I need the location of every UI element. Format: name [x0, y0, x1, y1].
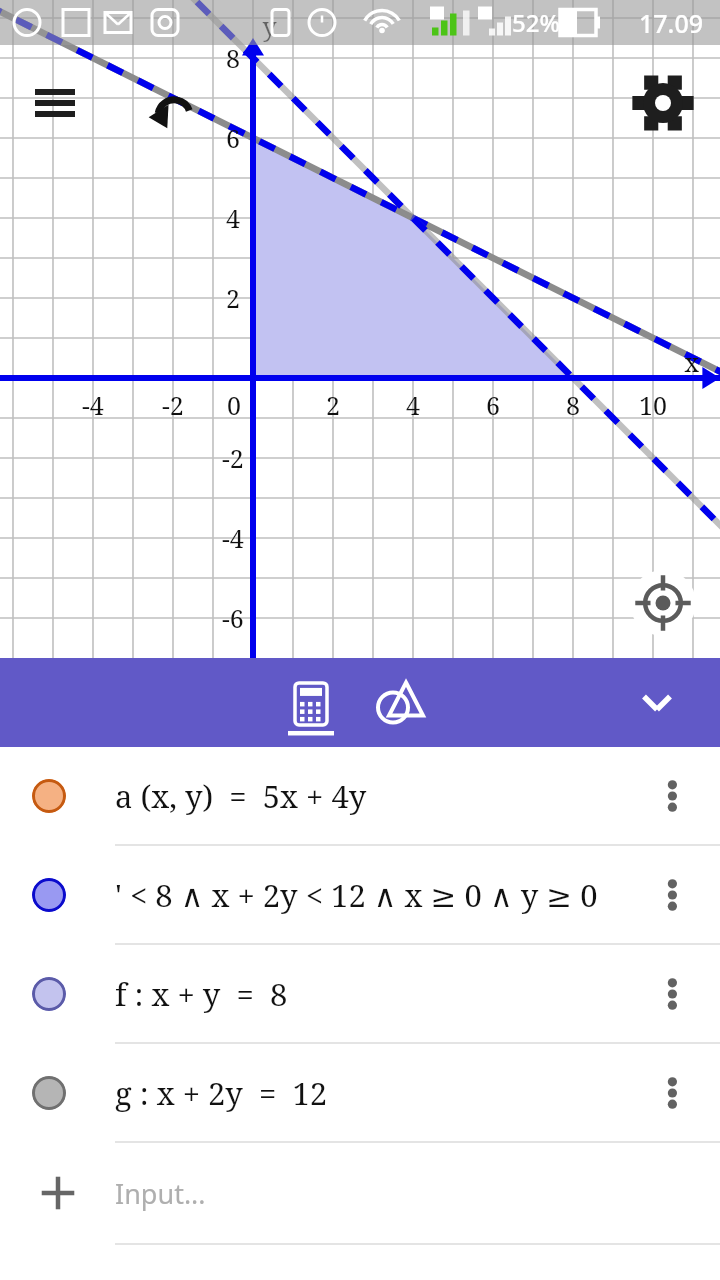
staticText: a (x, y) = 5x + 4y	[115, 775, 620, 817]
button[interactable]: Center view	[630, 570, 696, 636]
button[interactable]: Tools	[356, 658, 446, 747]
button[interactable]: Input...	[0, 1143, 720, 1243]
button[interactable]: Menu	[22, 78, 88, 144]
staticText: 52%	[512, 6, 560, 39]
button[interactable]: Algebra view	[266, 658, 356, 747]
button[interactable]: g : x + 2y = 12	[0, 1044, 720, 1141]
button[interactable]: f : x + y = 8	[0, 945, 720, 1042]
staticText: f : x + y = 8	[115, 973, 620, 1015]
button[interactable]: More options	[620, 846, 720, 943]
button[interactable]: ' < 8 ∧ x + 2y < 12 ∧ x ≥ 0 ∧ y ≥ 0	[0, 846, 720, 943]
button[interactable]: Collapse	[612, 658, 702, 747]
staticText: Input...	[115, 1175, 206, 1212]
button[interactable]: a (x, y) = 5x + 4y	[0, 747, 720, 844]
staticText: ' < 8 ∧ x + 2y < 12 ∧ x ≥ 0 ∧ y ≥ 0	[115, 874, 620, 916]
button[interactable]: More options	[620, 1044, 720, 1141]
button[interactable]: More options	[620, 945, 720, 1042]
staticText: g : x + 2y = 12	[115, 1072, 620, 1114]
button[interactable]: Settings	[632, 72, 694, 134]
button[interactable]: Undo	[140, 80, 202, 142]
button[interactable]: More options	[620, 747, 720, 844]
staticText: 17.09	[639, 6, 704, 40]
